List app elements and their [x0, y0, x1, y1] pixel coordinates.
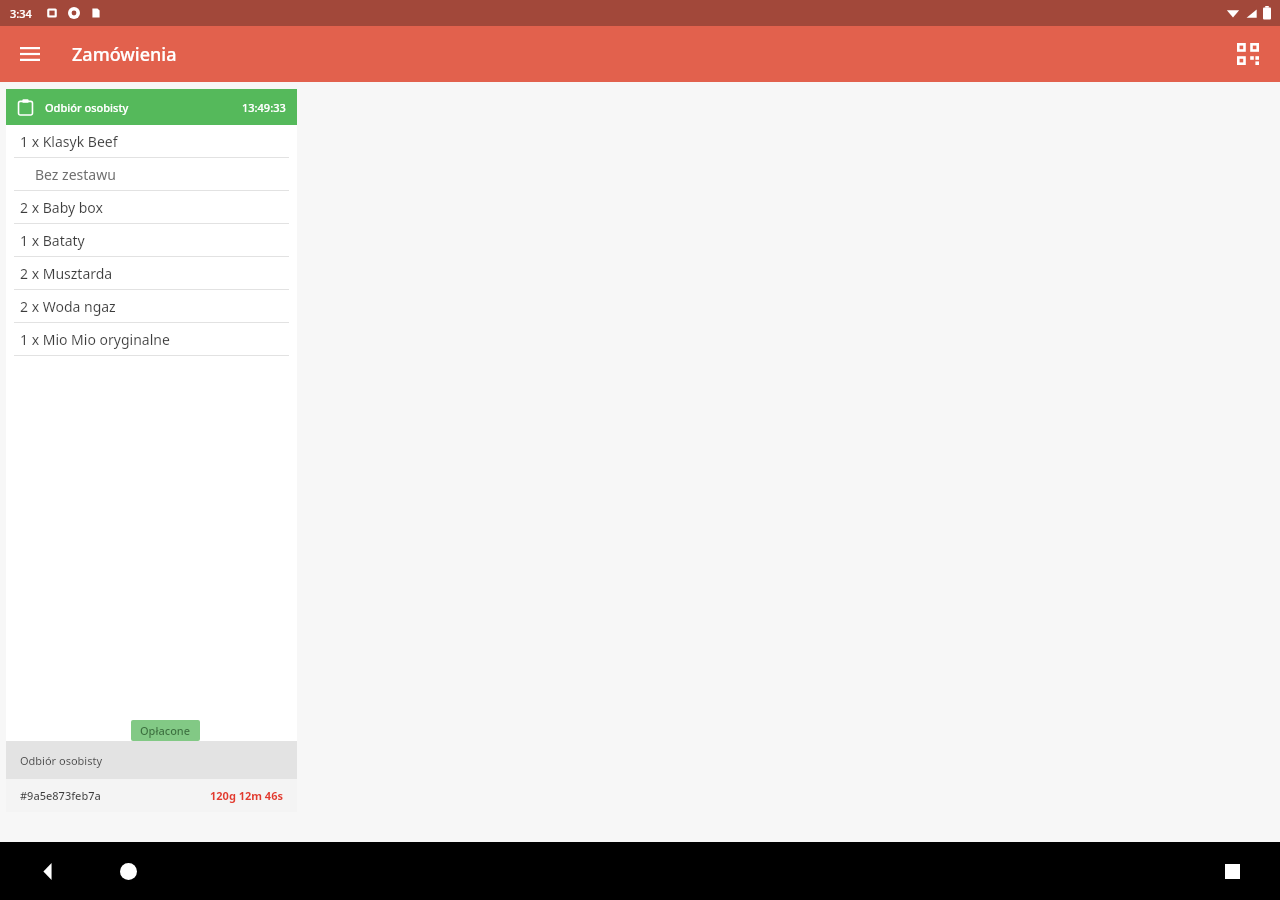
staticText: 13:49:33: [242, 100, 286, 115]
button[interactable]: 2 x Woda ngaz: [6, 290, 297, 322]
button[interactable]: Scan QR code: [1226, 32, 1270, 76]
staticText: 1 x Bataty: [20, 231, 85, 250]
button[interactable]: Home: [108, 851, 148, 891]
staticText: 3:34: [10, 6, 32, 21]
staticText: 2 x Musztarda: [20, 264, 113, 283]
button[interactable]: Open navigation menu: [10, 34, 50, 74]
button[interactable]: Odbiór osobisty: [6, 89, 297, 812]
staticText: 1 x Mio Mio oryginalne: [20, 330, 170, 349]
button[interactable]: 1 x Mio Mio oryginalne: [6, 323, 297, 355]
staticText: 120g 12m 46s: [210, 788, 283, 803]
staticText: Odbiór osobisty: [20, 753, 103, 768]
button[interactable]: Recent apps: [1212, 851, 1252, 891]
button[interactable]: 1 x Klasyk Beef: [6, 125, 297, 157]
button[interactable]: Opłacone: [131, 720, 200, 741]
staticText: 2 x Woda ngaz: [20, 297, 116, 316]
button[interactable]: 1 x Bataty: [6, 224, 297, 256]
staticText: #9a5e873feb7a: [20, 788, 101, 803]
staticText: Odbiór osobisty: [45, 100, 129, 115]
button[interactable]: 2 x Musztarda: [6, 257, 297, 289]
staticText: 2 x Baby box: [20, 198, 103, 217]
button[interactable]: Back: [28, 851, 68, 891]
staticText: Zamówienia: [72, 42, 177, 67]
staticText: Bez zestawu: [35, 165, 116, 184]
button[interactable]: Odbiór osobisty: [6, 741, 297, 779]
staticText: Opłacone: [140, 723, 191, 738]
staticText: 1 x Klasyk Beef: [20, 132, 118, 151]
button[interactable]: Bez zestawu: [6, 158, 297, 190]
button[interactable]: 2 x Baby box: [6, 191, 297, 223]
